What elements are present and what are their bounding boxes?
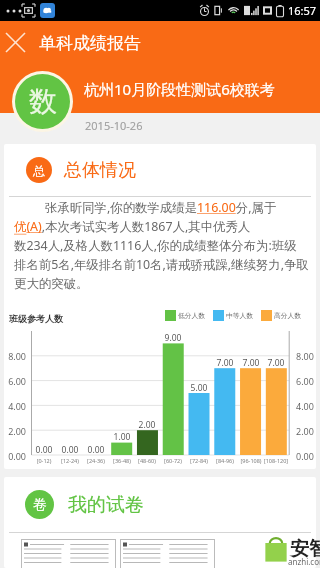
staticText: 总	[33, 163, 45, 178]
staticText: [108-120]	[261, 457, 291, 464]
staticText: [48-60)	[132, 457, 162, 464]
button[interactable]	[120, 539, 215, 568]
staticText: 8.00	[4, 350, 26, 362]
staticText: 0.00	[30, 444, 58, 456]
staticText: 6.00	[4, 375, 26, 387]
staticText: 总体情况	[64, 159, 136, 182]
staticText: 7.00	[262, 357, 290, 369]
staticText: 0.00	[56, 444, 84, 456]
staticText: 2.00	[133, 419, 161, 431]
staticText: 9.00	[159, 332, 187, 344]
staticText: 低分人数	[178, 311, 206, 320]
staticText: 卷	[33, 496, 47, 514]
staticText: 数	[29, 84, 57, 119]
staticText: [60-72)	[158, 457, 188, 464]
staticText: [84-96)	[210, 457, 240, 464]
staticText: [72-84)	[184, 457, 214, 464]
staticText: 8.00	[296, 350, 316, 362]
staticText: 安智	[290, 537, 320, 561]
staticText: 2015-10-26	[85, 118, 143, 133]
staticText: 单科成绩报告	[39, 33, 141, 54]
staticText: [96-108)	[236, 457, 266, 464]
staticText: 0.00	[82, 444, 110, 456]
staticText: 5.00	[185, 382, 213, 394]
button[interactable]: 卷	[25, 477, 316, 532]
staticText: 6.00	[296, 375, 316, 387]
staticText: [24-36)	[81, 457, 111, 464]
staticText: 2.00	[296, 425, 316, 437]
staticText: [0-12)	[29, 457, 59, 464]
staticText: 中等人数	[226, 311, 254, 320]
button[interactable]	[21, 539, 116, 568]
staticText: 16:57	[288, 3, 317, 18]
staticText: 2.00	[4, 425, 26, 437]
staticText: 7.00	[237, 357, 265, 369]
staticText: 4.00	[296, 400, 316, 412]
staticText: 班级参考人数	[9, 313, 63, 324]
staticText: 我的试卷	[68, 493, 144, 517]
staticText: 4.00	[4, 400, 26, 412]
staticText: 0.00	[4, 450, 26, 462]
staticText: 杭州10月阶段性测试6校联考	[84, 79, 275, 99]
staticText: 张承昕同学,你的数学成绩是116.00分,属于 优(A),本次考试实考人数186…	[14, 199, 309, 291]
button[interactable]: Close	[0, 22, 30, 62]
staticText: 7.00	[211, 357, 239, 369]
button[interactable]: 总	[26, 144, 316, 196]
staticText: 1.00	[108, 431, 136, 443]
staticText: [36-48)	[107, 457, 137, 464]
staticText: [12-24)	[55, 457, 85, 464]
staticText: anzhi.com	[288, 556, 320, 567]
staticText: 0.00	[296, 450, 316, 462]
staticText: 高分人数	[274, 311, 302, 320]
